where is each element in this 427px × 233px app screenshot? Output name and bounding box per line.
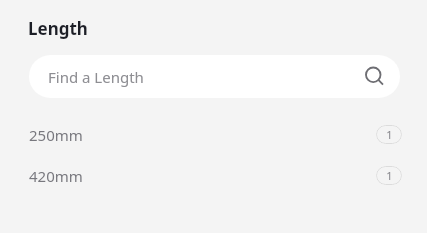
staticText: Find a Length: [48, 67, 364, 87]
button[interactable]: 250mm: [0, 114, 427, 155]
other: Search: [364, 66, 386, 88]
staticText: Length: [28, 17, 88, 40]
staticText: 250mm: [29, 125, 376, 145]
button[interactable]: 420mm: [0, 155, 427, 196]
button[interactable]: Find a Length: [29, 55, 400, 98]
staticText: 1: [386, 168, 393, 183]
staticText: 1: [386, 127, 393, 142]
staticText: 420mm: [29, 166, 376, 186]
